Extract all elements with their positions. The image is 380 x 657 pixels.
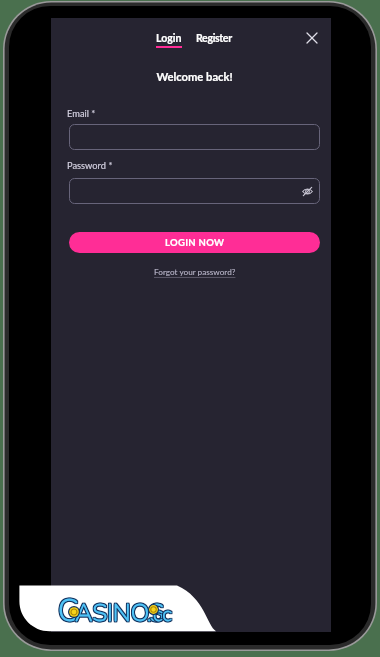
- button[interactable]: LOGIN NOW: [69, 232, 320, 253]
- staticText: .: [147, 599, 152, 628]
- staticText: ASINOS: [76, 596, 165, 628]
- staticText: C: [58, 591, 79, 623]
- button[interactable]: [69, 124, 320, 150]
- staticText: .: [147, 601, 152, 630]
- staticText: Register: [196, 32, 232, 45]
- staticText: C: [57, 590, 78, 622]
- button[interactable]: Show password: [299, 183, 315, 199]
- staticText: ASINOS: [75, 595, 164, 627]
- staticText: .: [146, 601, 151, 630]
- staticText: C: [57, 589, 78, 621]
- staticText: .: [148, 600, 153, 629]
- staticText: C: [59, 590, 80, 622]
- staticText: ASINOS: [74, 596, 163, 628]
- staticText: cc: [152, 601, 171, 630]
- staticText: C: [59, 591, 80, 623]
- staticText: C: [57, 591, 78, 623]
- staticText: ASINOS: [76, 597, 165, 629]
- staticText: ASINOS: [75, 596, 164, 628]
- staticText: C: [58, 589, 79, 621]
- staticText: cc: [152, 599, 171, 628]
- staticText: cc: [153, 599, 172, 628]
- staticText: cc: [153, 600, 172, 629]
- staticText: cc: [154, 600, 173, 629]
- staticText: C: [59, 589, 80, 621]
- button[interactable]: Login: [156, 32, 182, 48]
- staticText: Email *: [67, 108, 96, 119]
- staticText: Password *: [67, 160, 113, 171]
- staticText: .: [146, 600, 151, 629]
- staticText: cc: [154, 599, 173, 628]
- staticText: .: [147, 600, 152, 629]
- button[interactable]: Register: [196, 32, 232, 45]
- staticText: .: [148, 601, 153, 630]
- button[interactable]: Close: [301, 27, 323, 49]
- staticText: ASINOS: [74, 597, 163, 629]
- staticText: .: [146, 599, 151, 628]
- staticText: Login: [156, 32, 182, 45]
- staticText: ASINOS: [74, 595, 163, 627]
- staticText: LOGIN NOW: [165, 237, 225, 248]
- button[interactable]: Forgot your password?: [154, 267, 236, 277]
- staticText: cc: [152, 600, 171, 629]
- staticText: ASINOS: [75, 597, 164, 629]
- staticText: C: [58, 590, 79, 622]
- staticText: .: [148, 599, 153, 628]
- staticText: ASINOS: [76, 595, 165, 627]
- staticText: cc: [154, 601, 173, 630]
- button[interactable]: Casinos.cc: [56, 589, 174, 621]
- staticText: cc: [153, 601, 172, 630]
- staticText: Welcome back!: [156, 70, 233, 83]
- button[interactable]: Show password: [69, 178, 320, 204]
